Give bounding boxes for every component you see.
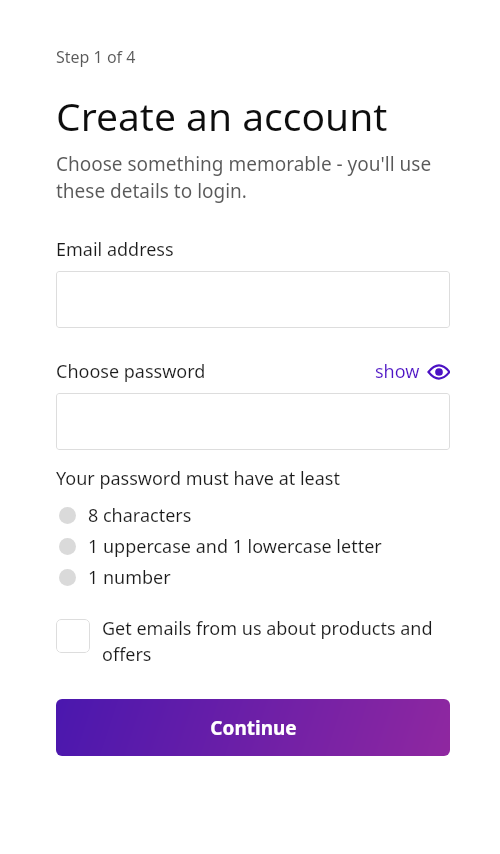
staticText: Your password must have at least [56, 466, 340, 491]
staticText: 1 number [88, 565, 171, 590]
staticText: 8 characters [88, 503, 192, 528]
other: Show password [428, 361, 450, 383]
button[interactable] [56, 393, 450, 450]
staticText: Step 1 of 4 [56, 46, 136, 68]
staticText: 1 uppercase and 1 lowercase letter [88, 534, 382, 559]
staticText: Get emails from us about products and of… [102, 616, 450, 667]
staticText: Create an account [56, 89, 388, 142]
button[interactable]: show [375, 359, 450, 384]
staticText: Choose password [56, 359, 206, 384]
button[interactable]: Continue [56, 699, 450, 756]
button[interactable]: Get emails from us about products and of… [56, 616, 450, 667]
staticText: show [375, 359, 420, 384]
button[interactable] [56, 271, 450, 328]
staticText: Continue [210, 715, 297, 741]
staticText: Choose something memorable - you'll use … [56, 151, 450, 204]
staticText: Email address [56, 237, 174, 262]
